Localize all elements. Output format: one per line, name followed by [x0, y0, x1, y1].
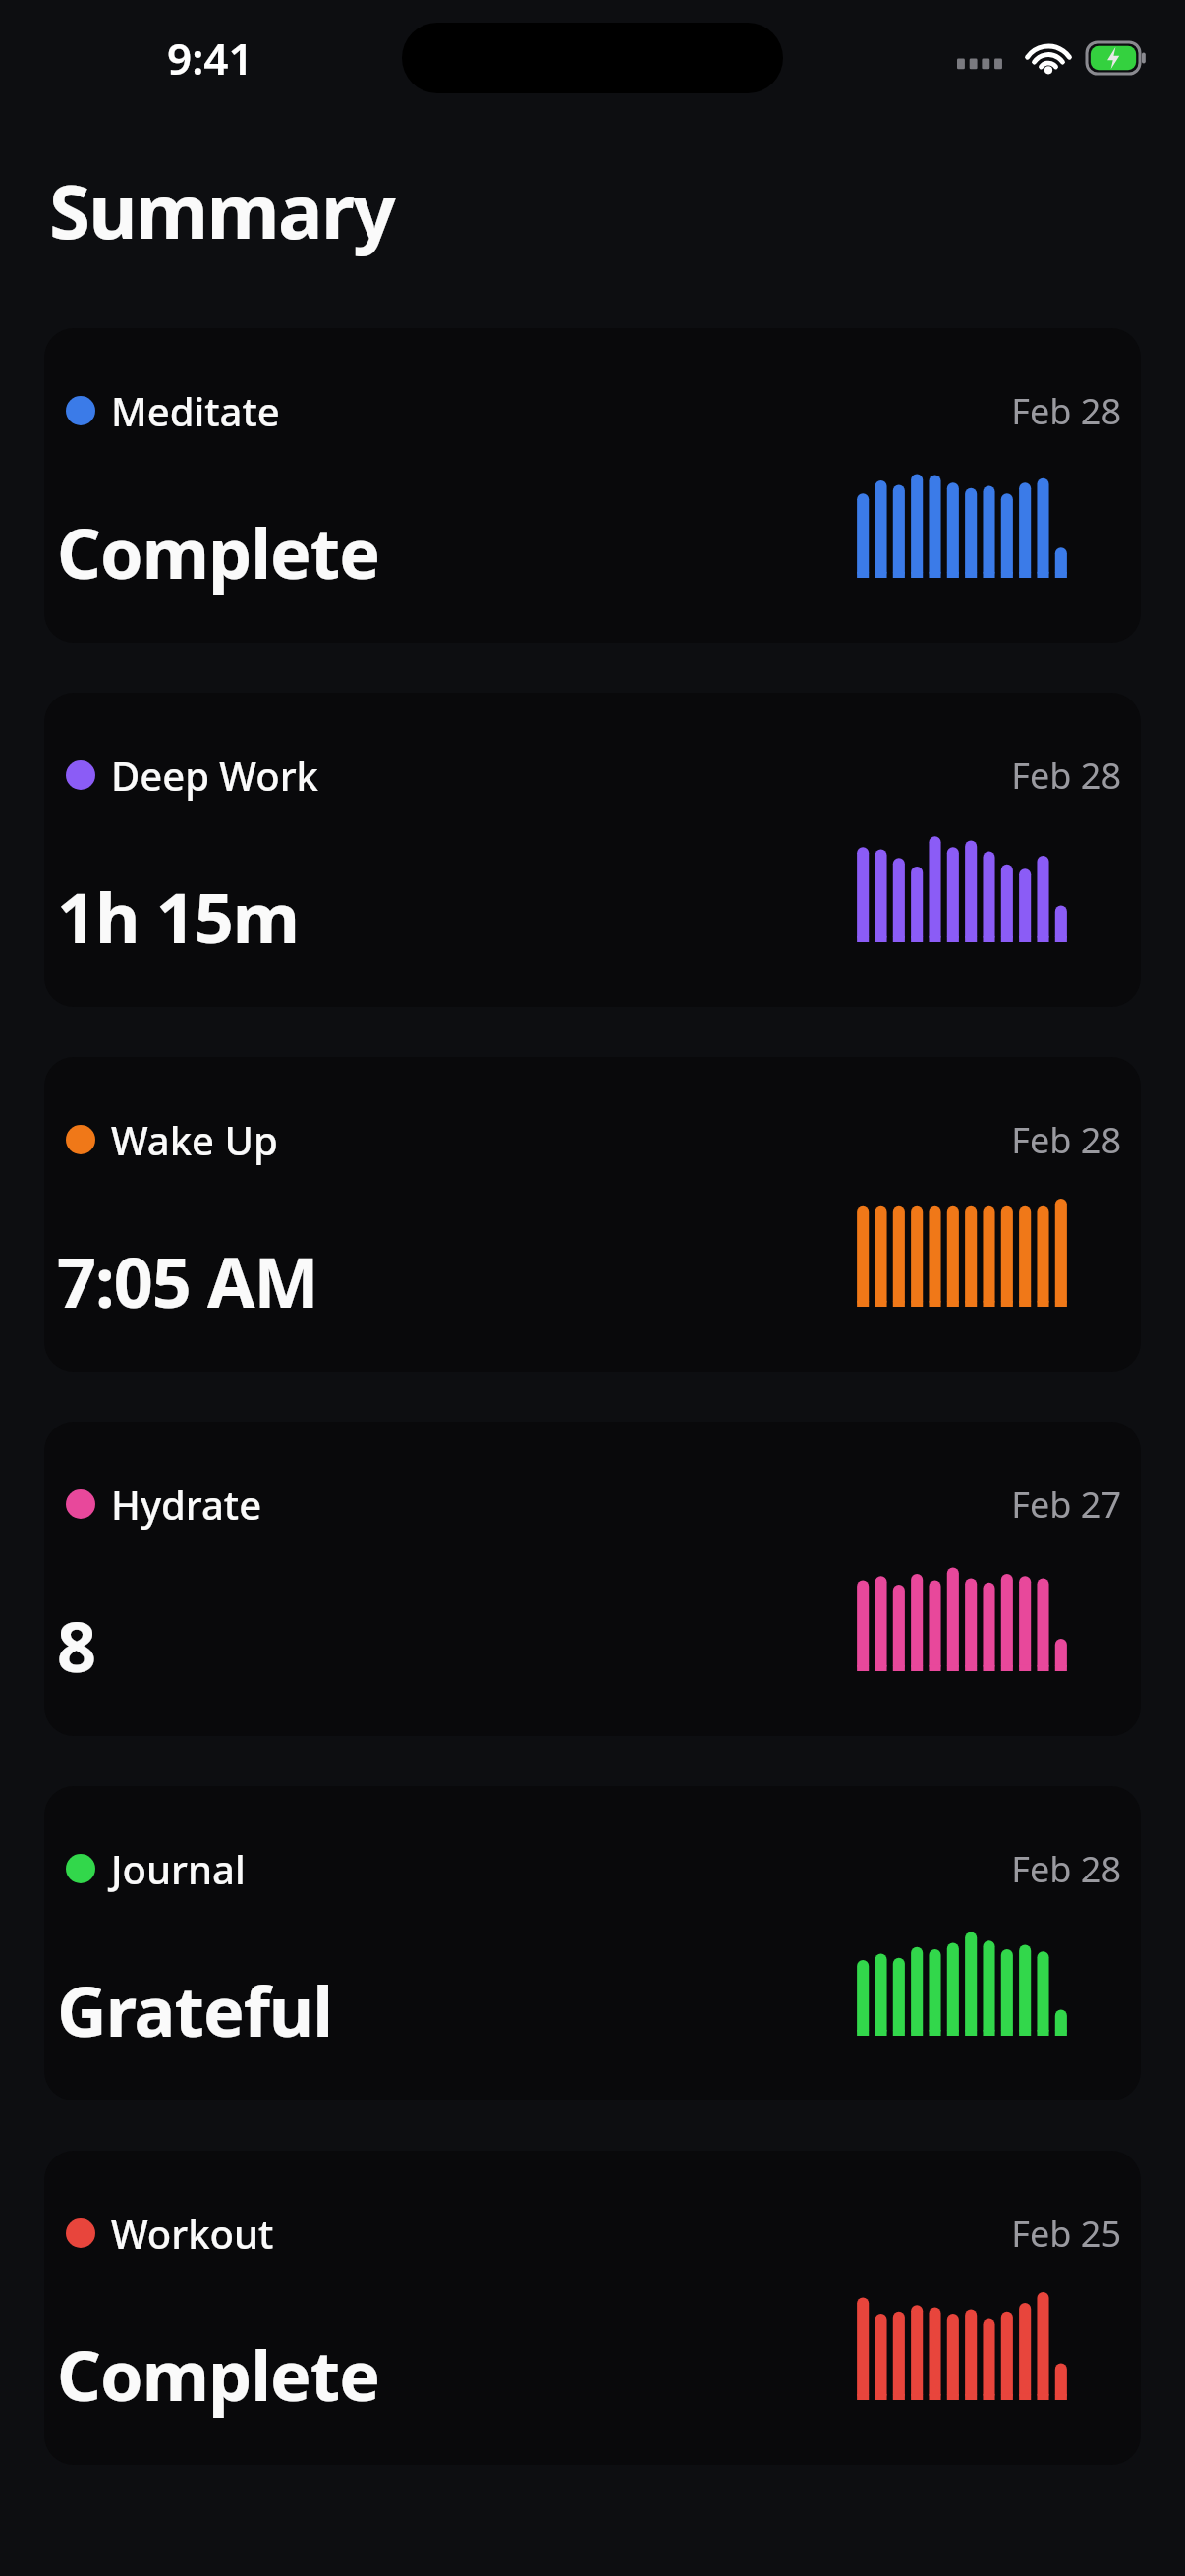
button[interactable]: Deep Work — [44, 693, 1141, 1007]
staticText: Journal — [111, 1842, 246, 1895]
staticText: Feb 28 — [1011, 387, 1121, 435]
button[interactable]: Hydrate — [44, 1422, 1141, 1736]
staticText: Feb 28 — [1011, 752, 1121, 800]
button[interactable]: Journal — [44, 1786, 1141, 2100]
staticText: Feb 28 — [1011, 1845, 1121, 1893]
staticText: Deep Work — [111, 749, 318, 802]
button[interactable]: Meditate — [44, 328, 1141, 643]
staticText: Grateful — [57, 1963, 333, 2056]
staticText: Complete — [57, 505, 379, 598]
staticText: Feb 28 — [1011, 1116, 1121, 1164]
staticText: Complete — [57, 2327, 379, 2421]
button[interactable]: Wake Up — [44, 1057, 1141, 1372]
staticText: Workout — [111, 2207, 274, 2260]
button[interactable]: Workout — [44, 2151, 1141, 2465]
staticText: Meditate — [111, 384, 280, 437]
staticText: 9:41 — [167, 28, 254, 87]
staticText: Wake Up — [111, 1113, 278, 1166]
staticText: 1h 15m — [57, 869, 300, 963]
staticText: 7:05 AM — [57, 1234, 318, 1327]
staticText: Summary — [49, 159, 395, 261]
staticText: Feb 25 — [1011, 2210, 1121, 2258]
staticText: Feb 27 — [1011, 1481, 1121, 1529]
staticText: 8 — [57, 1598, 96, 1692]
staticText: Hydrate — [111, 1478, 262, 1531]
